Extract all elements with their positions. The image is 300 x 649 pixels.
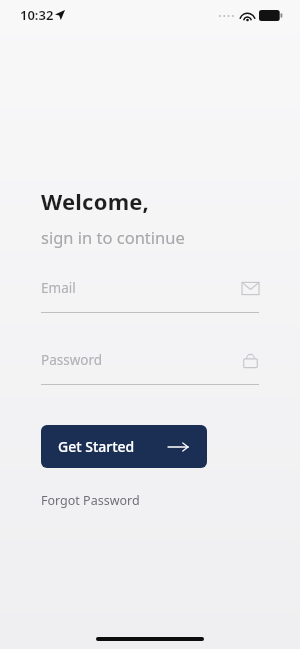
staticText: Forgot Password — [41, 492, 140, 509]
staticText: Welcome, — [41, 186, 150, 216]
button[interactable]: Get Started — [41, 425, 207, 468]
button[interactable]: Password — [41, 347, 259, 385]
staticText: Password — [41, 351, 242, 369]
staticText: 10:32 — [20, 6, 54, 24]
staticText: sign in to continue — [41, 226, 185, 248]
staticText: Get Started — [58, 437, 135, 456]
other: Password — [242, 352, 259, 369]
button[interactable]: Email — [41, 275, 259, 313]
button[interactable]: Forgot Password — [41, 492, 140, 509]
staticText: Email — [41, 279, 242, 297]
other: Email — [242, 280, 259, 297]
